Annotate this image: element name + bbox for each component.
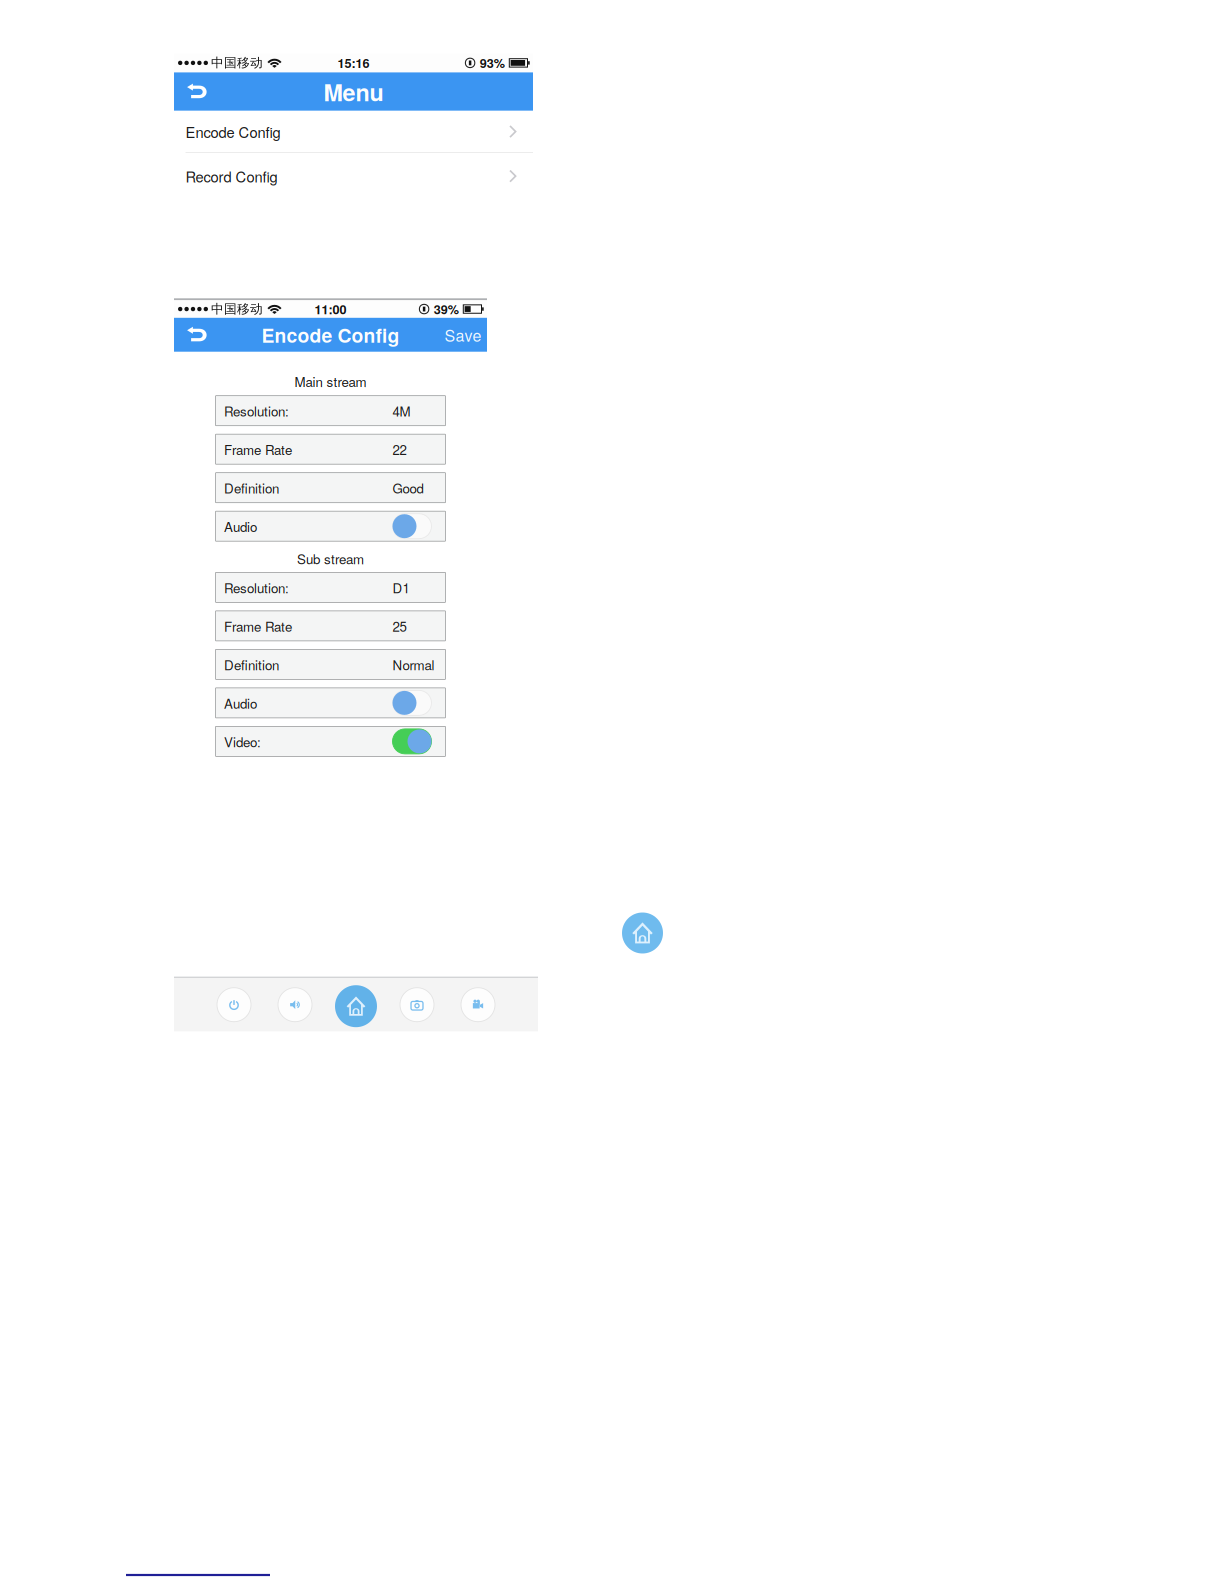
button[interactable]: Power <box>212 983 256 1027</box>
staticText: 22 <box>392 440 406 459</box>
staticText: 11:00 <box>314 300 346 318</box>
staticText: Video: <box>224 732 261 751</box>
button[interactable]: Back <box>178 318 216 352</box>
button[interactable]: Record Config <box>174 153 533 199</box>
staticText: Audio <box>224 693 257 712</box>
staticText: 15:16 <box>337 54 369 72</box>
button[interactable]: Definition <box>215 473 445 503</box>
button[interactable]: Video: <box>215 726 445 756</box>
button[interactable]: Audio <box>215 688 445 718</box>
staticText: Menu <box>323 75 383 108</box>
button[interactable]: Home <box>334 983 378 1027</box>
button[interactable]: Frame Rate <box>215 611 445 641</box>
staticText: Encode Config <box>261 321 399 349</box>
staticText: Definition <box>224 655 279 674</box>
button[interactable]: Home <box>622 912 663 953</box>
button[interactable]: Audio <box>273 983 317 1027</box>
button[interactable]: Audio <box>215 511 445 541</box>
staticText: D1 <box>392 578 409 597</box>
button[interactable]: Definition <box>215 649 445 679</box>
staticText: 4M <box>392 401 410 420</box>
staticText: Encode Config <box>185 121 280 142</box>
button[interactable]: Resolution: <box>215 396 445 426</box>
button[interactable]: Back <box>178 72 216 111</box>
staticText: 中国移动 <box>211 301 263 317</box>
button[interactable]: Encode Config <box>174 111 533 152</box>
staticText: Resolution: <box>224 401 289 420</box>
staticText: 39% <box>434 300 459 318</box>
button[interactable]: Save <box>443 318 483 352</box>
staticText: Main stream <box>294 372 366 391</box>
staticText: 中国移动 <box>211 55 263 71</box>
staticText: Frame Rate <box>224 616 292 635</box>
staticText: Save <box>444 323 481 346</box>
staticText: Definition <box>224 478 279 497</box>
staticText: Frame Rate <box>224 440 292 459</box>
button[interactable]: Frame Rate <box>215 434 445 464</box>
button[interactable]: Record <box>456 983 500 1027</box>
staticText: Sub stream <box>297 549 364 568</box>
staticText: Resolution: <box>224 578 289 597</box>
staticText: Audio <box>224 517 257 536</box>
button[interactable]: Snapshot <box>395 983 439 1027</box>
staticText: Normal <box>392 655 434 674</box>
staticText: 25 <box>392 616 406 635</box>
staticText: 93% <box>480 54 505 72</box>
button[interactable]: Resolution: <box>215 572 445 602</box>
staticText: Record Config <box>185 166 277 187</box>
staticText: Good <box>392 478 423 497</box>
